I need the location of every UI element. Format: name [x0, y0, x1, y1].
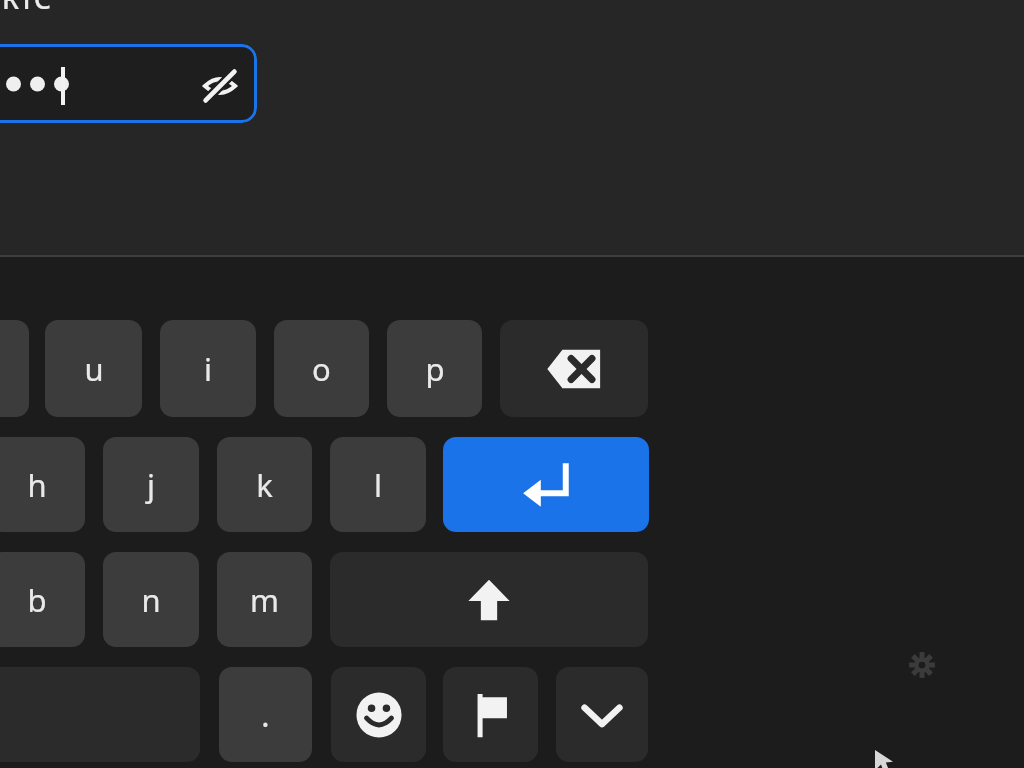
button[interactable]: Show password	[198, 64, 242, 108]
button[interactable]: Backspace	[500, 320, 648, 417]
button[interactable]: Show password	[0, 44, 257, 123]
button[interactable]: Hide keyboard	[556, 667, 648, 762]
button[interactable]: k	[217, 437, 312, 532]
button[interactable]: o	[274, 320, 369, 417]
staticText: b	[27, 579, 47, 621]
staticText: h	[27, 464, 47, 506]
button[interactable]: l	[330, 437, 426, 532]
button[interactable]: h	[0, 437, 85, 532]
button[interactable]: j	[103, 437, 199, 532]
staticText: k	[256, 464, 273, 506]
staticText: n	[141, 579, 161, 621]
button[interactable]: Enter	[443, 437, 649, 532]
staticText: .	[261, 694, 270, 736]
button[interactable]: Change keyboard language	[443, 667, 538, 762]
staticText: RTC	[2, 0, 51, 17]
staticText: u	[84, 348, 104, 390]
button[interactable]: n	[103, 552, 199, 647]
staticText: j	[147, 464, 155, 506]
button[interactable]: m	[217, 552, 312, 647]
staticText: l	[374, 464, 382, 506]
staticText: o	[312, 348, 331, 390]
button[interactable]: i	[160, 320, 256, 417]
button[interactable]: Settings	[908, 651, 936, 679]
staticText: i	[204, 348, 212, 390]
staticText: m	[250, 579, 279, 621]
button[interactable]: .	[219, 667, 312, 762]
button[interactable]: Emoji	[331, 667, 426, 762]
button[interactable]: y	[0, 320, 29, 417]
button[interactable]: Shift	[330, 552, 648, 647]
button[interactable]: u	[45, 320, 142, 417]
button[interactable]: b	[0, 552, 85, 647]
button[interactable]: p	[387, 320, 482, 417]
staticText: p	[425, 348, 445, 390]
